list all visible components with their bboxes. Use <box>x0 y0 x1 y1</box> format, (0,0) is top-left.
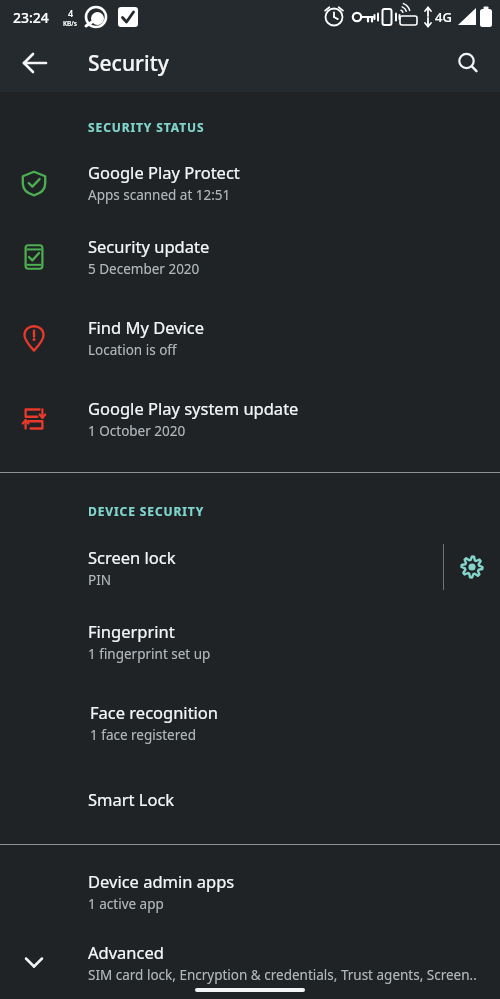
staticText: 5 December 2020 <box>88 260 200 278</box>
staticText: Smart Lock <box>88 788 175 810</box>
button[interactable]: Back <box>13 41 57 85</box>
button[interactable]: Screen lock settings <box>444 539 500 595</box>
button[interactable]: Advanced <box>0 925 500 999</box>
staticText: Google Play Protect <box>88 161 240 183</box>
button[interactable]: Search <box>444 39 492 87</box>
staticText: Apps scanned at 12:51 <box>88 186 231 204</box>
staticText: 4G <box>435 8 452 26</box>
staticText: KB/s <box>63 19 78 28</box>
staticText: SECURITY STATUS <box>88 119 205 135</box>
button[interactable]: Find My Device <box>0 297 500 378</box>
staticText: 1 active app <box>88 895 164 913</box>
staticText: 1 fingerprint set up <box>88 645 211 663</box>
staticText: Advanced <box>88 941 164 963</box>
button[interactable]: Google Play system update <box>0 378 500 459</box>
staticText: Security update <box>88 235 210 257</box>
staticText: Fingerprint <box>88 620 175 642</box>
button[interactable]: Security update <box>0 216 500 297</box>
staticText: 1 face registered <box>90 726 196 744</box>
staticText: Google Play system update <box>88 397 299 419</box>
button[interactable]: Smart Lock <box>0 763 500 835</box>
button[interactable]: Device admin apps <box>0 857 500 925</box>
staticText: PIN <box>88 571 112 589</box>
button[interactable]: Google Play Protect <box>0 149 500 216</box>
staticText: Find My Device <box>88 316 205 338</box>
staticText: 23:24 <box>13 8 49 27</box>
staticText: DEVICE SECURITY <box>88 503 205 519</box>
staticText: Location is off <box>88 341 177 359</box>
button[interactable]: Face recognition <box>0 682 500 763</box>
staticText: 1 October 2020 <box>88 422 186 440</box>
button[interactable]: Screen lock <box>0 533 500 601</box>
staticText: 4 <box>68 7 74 19</box>
staticText: Security <box>88 49 169 78</box>
staticText: Face recognition <box>90 701 219 723</box>
staticText: SIM card lock, Encryption & credentials,… <box>88 966 477 984</box>
button[interactable]: Fingerprint <box>0 601 500 682</box>
staticText: Screen lock <box>88 546 176 568</box>
staticText: Device admin apps <box>88 870 235 892</box>
